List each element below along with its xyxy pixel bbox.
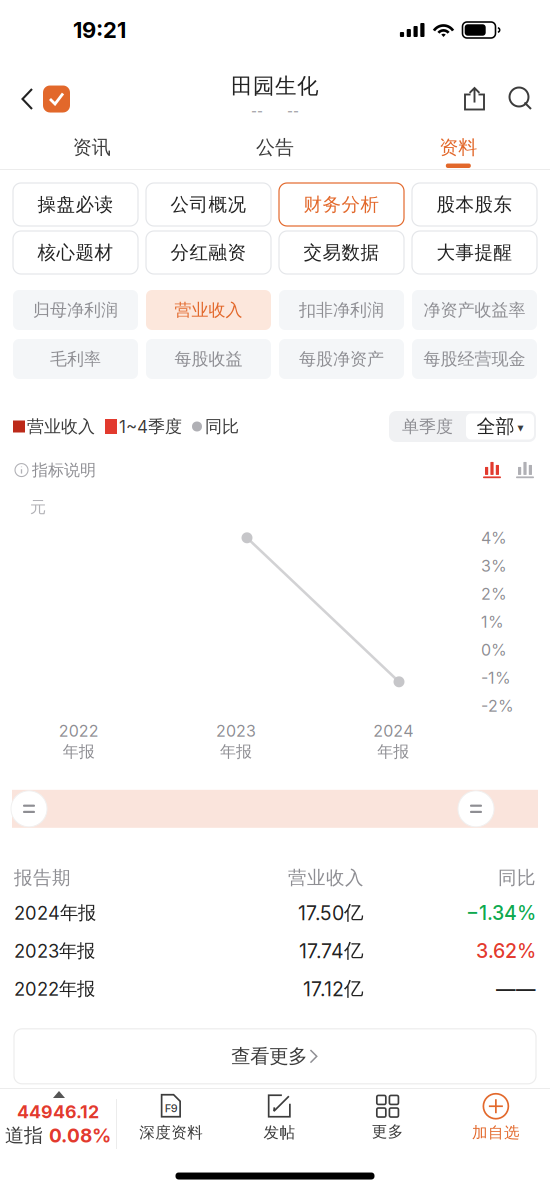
staticText: 44946.12 [17,1101,99,1122]
staticText: 资料 [439,136,477,159]
staticText: 毛利率 [50,348,101,370]
staticText: 更多 [372,1122,404,1141]
staticText: -1% [481,668,511,687]
button[interactable]: 核心题材 [13,231,138,274]
staticText: 1~4季度 [119,416,182,437]
staticText: 每股收益 [174,348,242,370]
staticText: 元 [30,497,46,517]
staticText: ▾ [517,420,523,434]
staticText: 道指 [5,1123,43,1147]
staticText: 2023 [216,721,256,741]
button[interactable]: 每股净资产 [279,339,404,379]
staticText: 大事提醒 [436,241,512,264]
staticText: 报告期 [14,866,71,889]
button[interactable]: Share [452,69,497,129]
button[interactable]: 操盘必读 [13,183,138,226]
staticText: 全部 [476,414,514,438]
button[interactable]: 交易数据 [279,231,404,274]
button[interactable]: Adjust range [458,791,494,827]
button[interactable]: 44946.12 [0,1085,116,1163]
button[interactable]: 净资产收益率 [412,290,537,330]
staticText: —— [496,977,536,1001]
staticText: 公告 [256,136,294,159]
staticText: -2% [481,696,514,715]
button[interactable]: 资讯 [0,120,183,170]
staticText: 单季度 [402,416,453,437]
staticText: 资讯 [73,136,111,159]
button[interactable]: Bar chart [483,462,501,479]
staticText: 0% [481,640,507,659]
staticText: −1.34% [466,901,536,925]
staticText: 同比 [498,866,536,889]
button[interactable]: Back [0,69,80,129]
staticText: 1% [481,612,504,631]
staticText: 归母净利润 [33,299,118,321]
button[interactable]: Adjust range [11,791,47,827]
staticText: 2023年报 [14,939,95,962]
staticText: 2022 [59,721,99,741]
button[interactable]: 营业收入 [146,290,271,330]
staticText: 每股净资产 [299,348,384,370]
staticText: 年报 [377,742,409,762]
staticText: 核心题材 [37,241,113,264]
staticText: 2022年报 [14,977,95,1000]
button[interactable]: 归母净利润 [13,290,138,330]
button[interactable]: 资料 [367,120,550,170]
staticText: 0.08% [49,1124,111,1147]
staticText: 股本股东 [436,193,512,216]
button[interactable]: Line chart [516,462,534,479]
staticText: F9 [165,1102,178,1115]
button[interactable]: 每股经营现金 [412,339,537,379]
button[interactable]: 大事提醒 [412,231,537,274]
staticText: 营业收入 [27,416,95,437]
staticText: 2% [481,584,507,603]
button[interactable]: 更多 [333,1088,442,1160]
staticText: 19:21 [73,17,126,43]
staticText: 分红融资 [170,241,246,264]
button[interactable]: 每股收益 [146,339,271,379]
staticText: 加自选 [472,1123,520,1142]
button[interactable]: Search [497,69,550,129]
staticText: 公司概况 [170,193,246,216]
button[interactable]: 毛利率 [13,339,138,379]
staticText: 深度资料 [139,1123,203,1142]
staticText: 3% [481,556,507,575]
staticText: 财务分析 [303,193,379,216]
staticText: 年报 [63,742,95,762]
staticText: 17.50亿 [298,900,364,925]
staticText: 查看更多 [231,1044,307,1068]
button[interactable]: 查看更多 [14,1029,536,1084]
button[interactable]: 公告 [183,120,367,170]
staticText: 营业收入 [288,866,364,889]
staticText: 营业收入 [174,299,242,321]
button[interactable]: 财务分析 [279,183,404,226]
staticText: 同比 [205,416,239,437]
button[interactable]: 分红融资 [146,231,271,274]
staticText: 17.74亿 [299,938,364,963]
staticText: 发帖 [263,1123,295,1142]
button[interactable]: 扣非净利润 [279,290,404,330]
button[interactable]: 单季度 [389,411,466,442]
staticText: 扣非净利润 [299,299,384,321]
staticText: 3.62% [476,939,536,963]
button[interactable]: 加自选 [442,1088,550,1160]
staticText: 2024 [373,721,413,741]
staticText: 净资产收益率 [423,299,525,321]
staticText: 17.12亿 [303,976,364,1001]
button[interactable]: 公司概况 [146,183,271,226]
staticText: 4% [481,528,507,547]
staticText: 2024年报 [14,901,96,924]
button[interactable]: 指标说明 [15,460,96,480]
staticText: 每股经营现金 [423,348,525,370]
staticText: 交易数据 [303,241,379,264]
staticText: 年报 [220,742,252,762]
staticText: 指标说明 [32,460,96,480]
button[interactable]: F9 [117,1088,225,1160]
staticText: -- -- [251,104,299,119]
staticText: 操盘必读 [37,193,113,216]
button[interactable]: 股本股东 [412,183,537,226]
staticText: 田园生化 [231,73,319,100]
button[interactable]: 全部 [466,413,534,439]
button[interactable]: 发帖 [225,1088,333,1160]
